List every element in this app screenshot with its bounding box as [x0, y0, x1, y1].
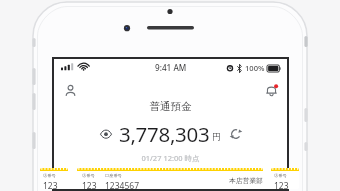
staticText: 店番号	[82, 173, 95, 178]
staticText: 100%	[245, 63, 265, 73]
button[interactable]: 店番号	[77, 168, 263, 189]
staticText: 123	[82, 180, 97, 189]
staticText: 普通預金	[54, 100, 287, 113]
staticText: 1234567	[105, 180, 140, 189]
staticText: 123	[274, 180, 289, 189]
staticText: 9:41 AM	[155, 62, 187, 73]
staticText: 01/27 12:00 時点	[54, 153, 287, 163]
button[interactable]: 店番号	[40, 168, 68, 189]
button[interactable]: Refresh balance	[227, 125, 245, 143]
staticText: 店番号	[43, 173, 56, 178]
staticText: 円	[212, 132, 221, 143]
staticText: 店番号	[274, 173, 287, 178]
staticText: 本店営業部	[229, 176, 263, 185]
button[interactable]: 店番号	[271, 168, 299, 189]
button[interactable]: Toggle balance visibility	[96, 125, 116, 143]
staticText: 123	[43, 180, 58, 189]
button[interactable]: Account	[60, 80, 80, 100]
button[interactable]: Notifications	[261, 80, 281, 100]
staticText: 3,778,303	[119, 120, 210, 148]
staticText: 口座番号	[105, 173, 122, 178]
